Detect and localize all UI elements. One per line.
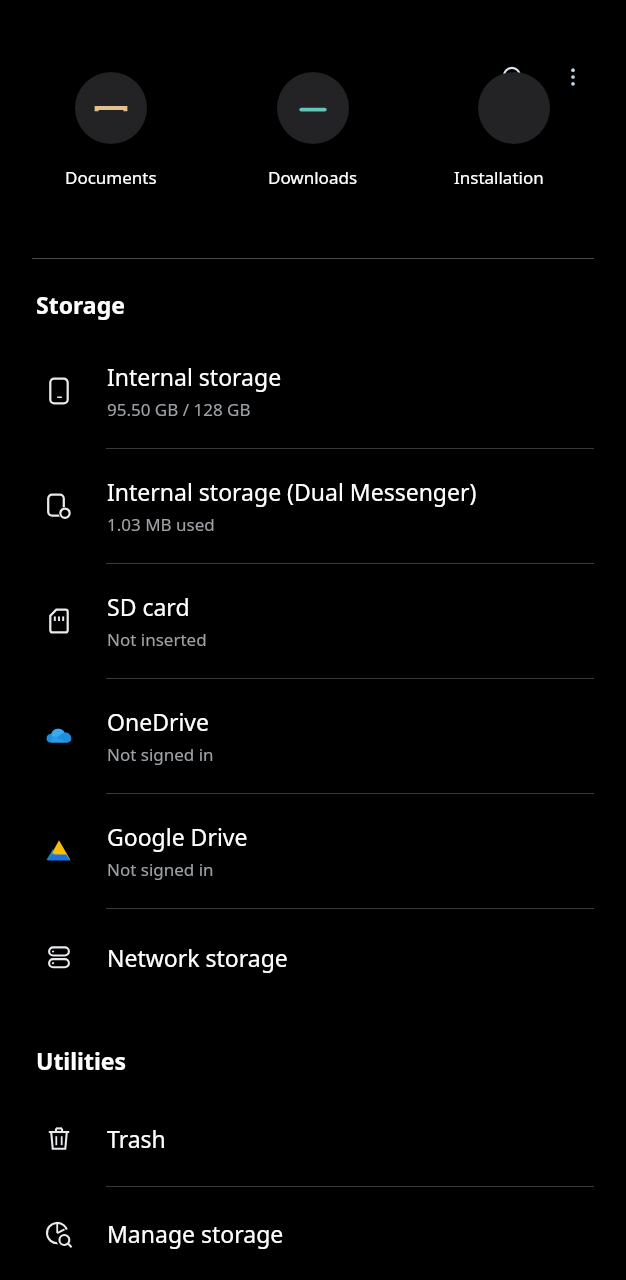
staticText: OneDrive — [107, 706, 210, 737]
button[interactable]: Trash — [0, 1090, 626, 1186]
staticText: Manage storage — [107, 1218, 284, 1249]
staticText: Storage — [36, 289, 125, 320]
button[interactable]: Internal storage — [0, 334, 626, 448]
staticText: Google Drive — [107, 821, 248, 852]
staticText: Trash — [107, 1123, 166, 1154]
button[interactable]: Downloads — [253, 108, 373, 204]
staticText: Not signed in — [107, 743, 214, 766]
button[interactable]: Internal storage (Dual Messenger) — [0, 449, 626, 563]
staticText: Installation files — [454, 166, 574, 189]
staticText: Documents — [65, 166, 157, 189]
button[interactable]: Documents — [51, 108, 171, 204]
staticText: 95.50 GB / 128 GB — [107, 398, 251, 421]
button[interactable]: Google Drive — [0, 794, 626, 908]
button[interactable]: Installation files — [454, 108, 574, 204]
staticText: Utilities — [36, 1045, 127, 1076]
button[interactable]: OneDrive — [0, 679, 626, 793]
button[interactable]: Search — [490, 54, 538, 102]
staticText: Internal storage — [107, 361, 282, 392]
staticText: Network storage — [107, 942, 288, 973]
button[interactable]: Network storage — [0, 909, 626, 1005]
staticText: Downloads — [268, 166, 358, 189]
staticText: Not inserted — [107, 628, 207, 651]
staticText: 1.03 MB used — [107, 513, 215, 536]
staticText: Internal storage (Dual Messenger) — [107, 476, 477, 507]
staticText: Not signed in — [107, 858, 214, 881]
staticText: SD card — [107, 591, 190, 622]
button[interactable]: Manage storage — [0, 1187, 626, 1280]
button[interactable]: More options — [550, 54, 596, 100]
button[interactable]: SD card — [0, 564, 626, 678]
